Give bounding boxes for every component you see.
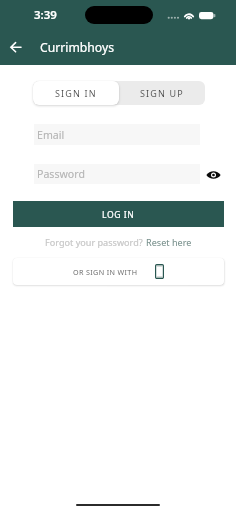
button[interactable]: SIGN UP <box>119 81 205 105</box>
button[interactable]: LOG IN <box>13 201 224 227</box>
button[interactable]: Back <box>2 32 30 60</box>
button[interactable]: Password <box>34 164 200 184</box>
staticText: SIGN UP <box>140 87 184 99</box>
staticText: Forgot your password? <box>45 236 146 248</box>
button[interactable]: Email <box>34 124 200 145</box>
button[interactable]: Reset here <box>146 236 192 248</box>
button[interactable]: OR SIGN IN WITH <box>13 258 224 285</box>
staticText: SIGN IN <box>55 87 97 99</box>
staticText: 3:39 <box>34 7 57 23</box>
staticText: Password <box>37 167 85 181</box>
staticText: Currimbhoys <box>40 39 115 56</box>
staticText: Reset here <box>146 236 192 248</box>
button[interactable]: Show password <box>203 165 223 185</box>
button[interactable]: SIGN IN <box>33 81 119 105</box>
staticText: LOG IN <box>102 209 135 221</box>
staticText: Email <box>37 128 65 142</box>
staticText: OR SIGN IN WITH <box>73 267 138 277</box>
